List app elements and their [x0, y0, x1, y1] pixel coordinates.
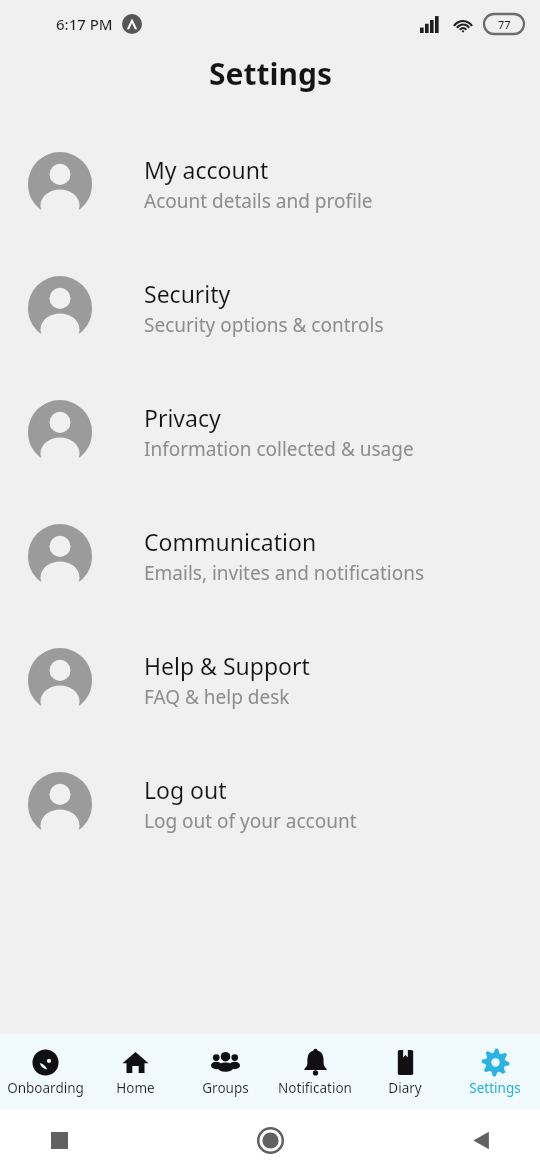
- staticText: Diary: [388, 1079, 422, 1097]
- staticText: Log out of your account: [144, 808, 357, 834]
- staticText: Privacy: [144, 402, 221, 433]
- button[interactable]: Log out: [0, 742, 540, 866]
- staticText: Settings: [209, 53, 332, 94]
- staticText: Security options & controls: [144, 312, 384, 338]
- staticText: Acount details and profile: [144, 188, 373, 214]
- button[interactable]: Groups: [180, 1048, 270, 1097]
- button[interactable]: Help & Support: [0, 618, 540, 742]
- button[interactable]: Diary: [360, 1048, 450, 1097]
- staticText: Settings: [469, 1079, 521, 1097]
- staticText: Emails, invites and notifications: [144, 560, 425, 586]
- staticText: Help & Support: [144, 650, 310, 681]
- button[interactable]: My account: [0, 122, 540, 246]
- button[interactable]: Settings: [450, 1048, 540, 1097]
- button[interactable]: Onboarding: [0, 1048, 90, 1097]
- button[interactable]: Communication: [0, 494, 540, 618]
- staticText: Log out: [144, 774, 227, 805]
- staticText: 6:17 PM: [56, 14, 113, 34]
- staticText: Information collected & usage: [144, 436, 414, 462]
- button[interactable]: Back: [458, 1117, 504, 1163]
- button[interactable]: Home: [247, 1117, 293, 1163]
- staticText: Security: [144, 278, 231, 309]
- staticText: Home: [116, 1079, 155, 1097]
- staticText: Onboarding: [7, 1079, 84, 1097]
- button[interactable]: Recent apps: [36, 1117, 82, 1163]
- staticText: Groups: [202, 1079, 249, 1097]
- button[interactable]: Security: [0, 246, 540, 370]
- button[interactable]: Notification: [270, 1048, 360, 1097]
- staticText: 77: [498, 17, 511, 32]
- staticText: Communication: [144, 526, 317, 557]
- button[interactable]: Privacy: [0, 370, 540, 494]
- staticText: My account: [144, 154, 269, 185]
- button[interactable]: Home: [90, 1048, 180, 1097]
- staticText: Notification: [278, 1079, 352, 1097]
- staticText: FAQ & help desk: [144, 684, 290, 710]
